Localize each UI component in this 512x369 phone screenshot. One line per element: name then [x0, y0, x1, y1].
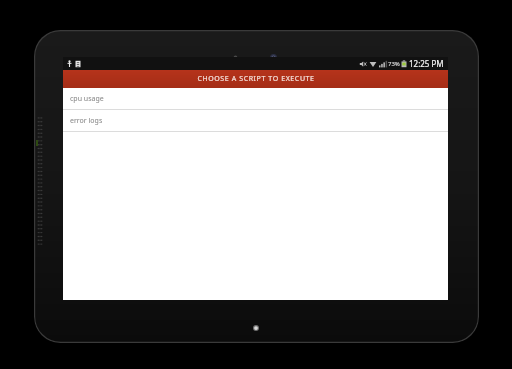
staticText: 73% [388, 60, 400, 68]
button[interactable]: CHOOSE A SCRIPT TO EXECUTE [63, 70, 448, 88]
staticText: CHOOSE A SCRIPT TO EXECUTE [197, 74, 315, 84]
staticText: error logs [70, 116, 103, 126]
staticText: cpu usage [70, 94, 104, 104]
staticText: 12:25 PM [409, 58, 444, 69]
button[interactable]: error logs [63, 110, 448, 132]
button[interactable]: cpu usage [63, 88, 448, 110]
